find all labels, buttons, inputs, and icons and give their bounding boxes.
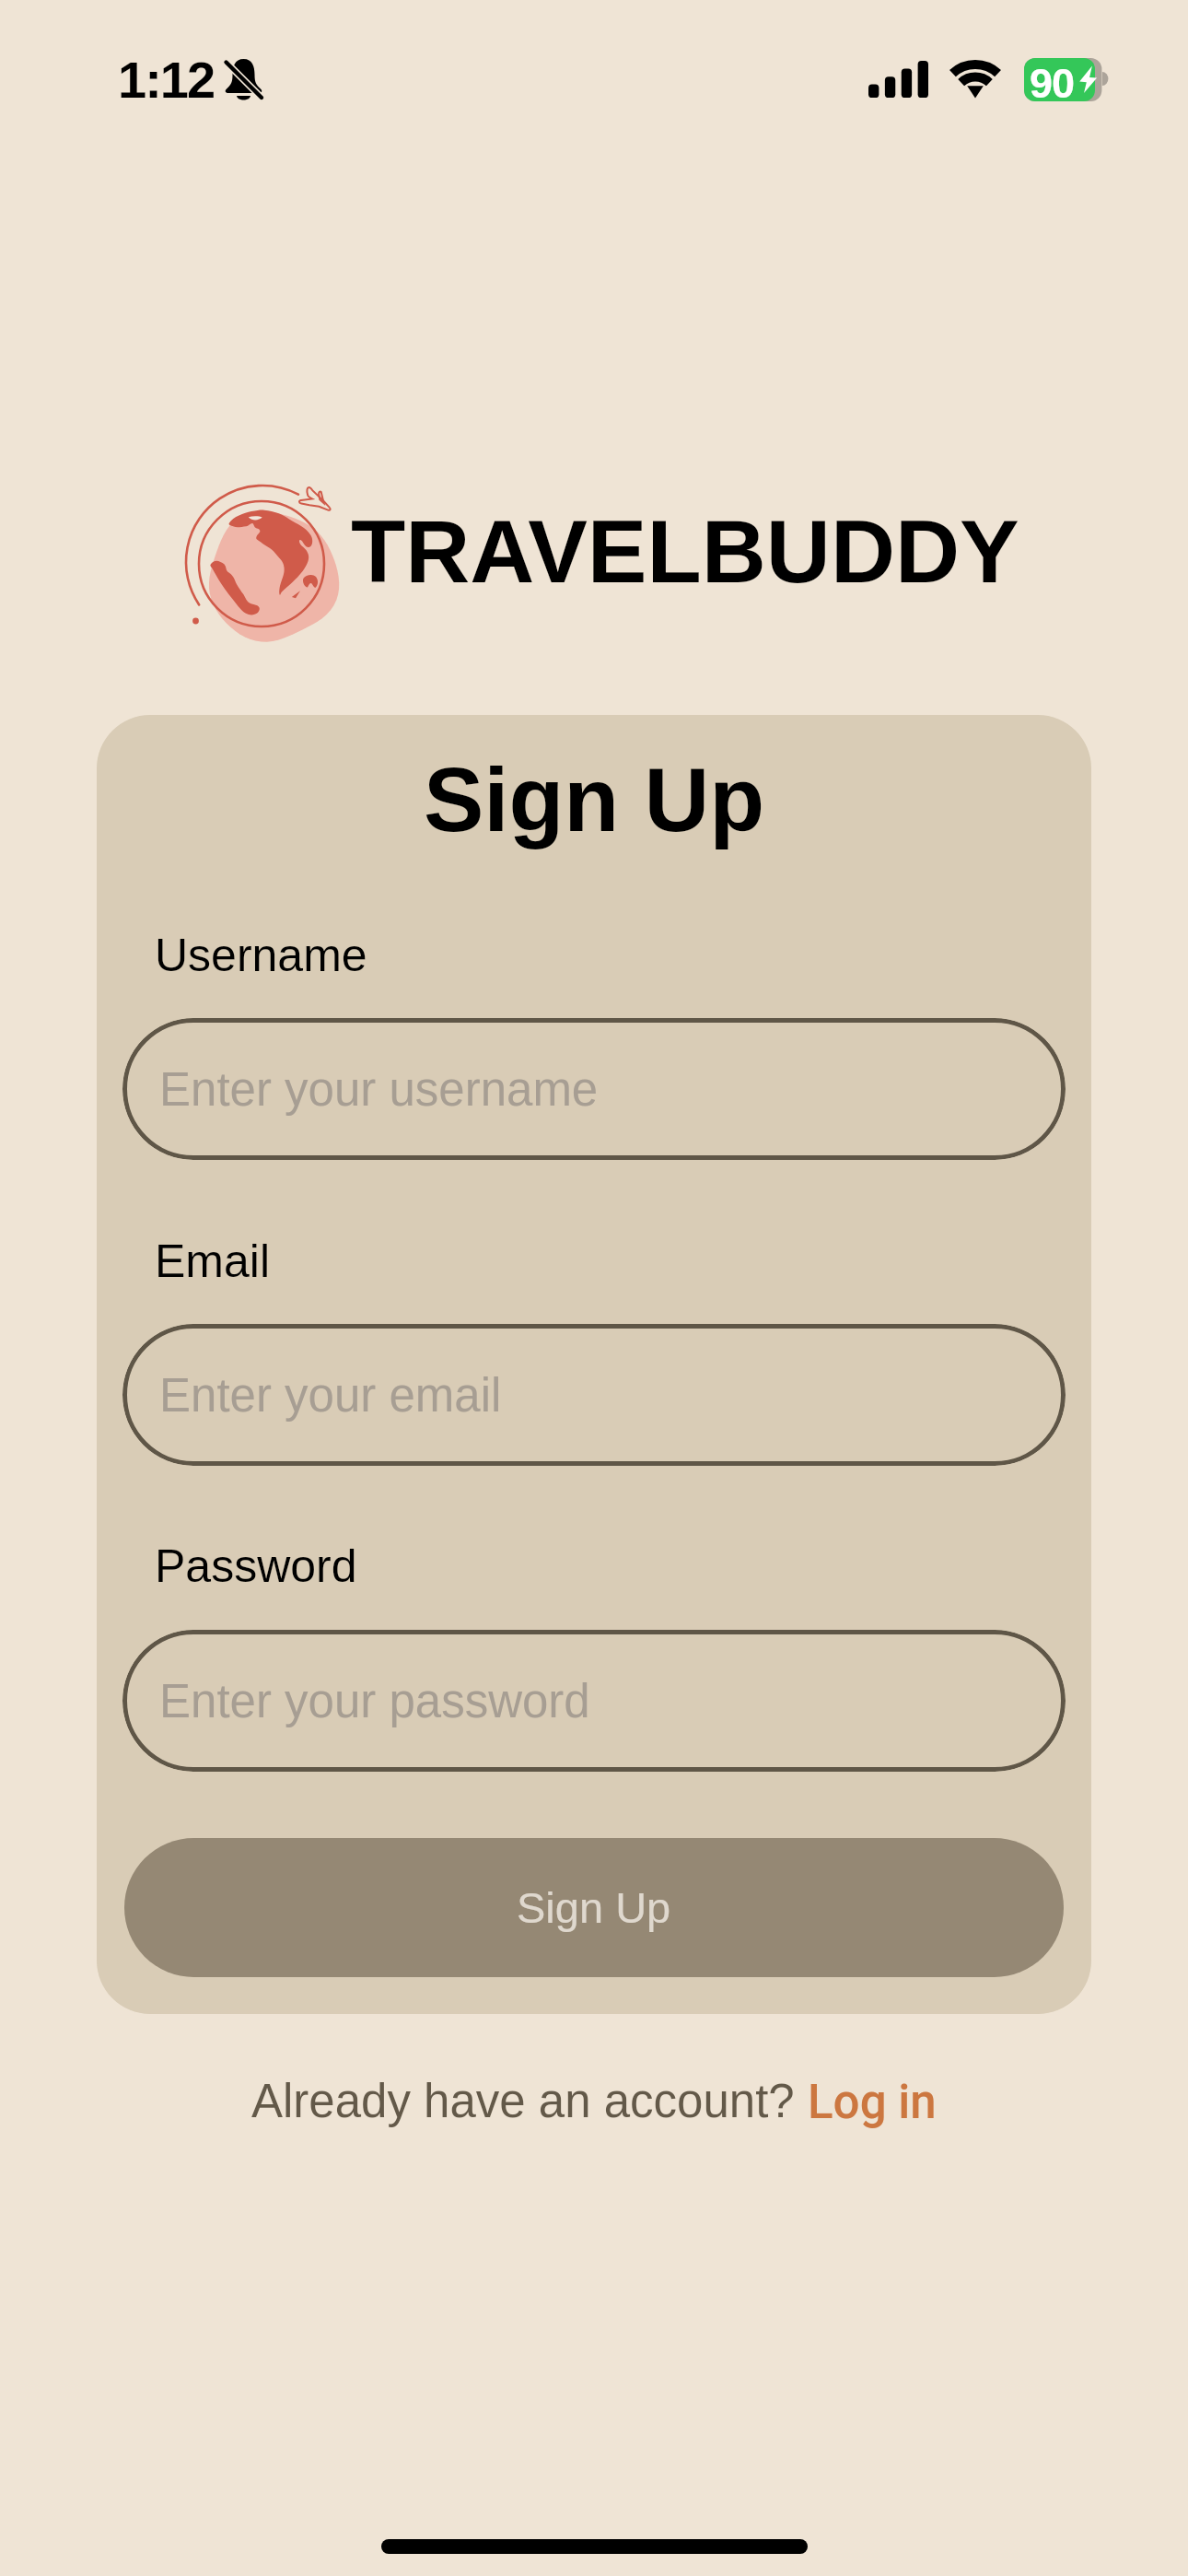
staticText: 1:12 [118, 51, 215, 109]
button[interactable]: Log in [808, 2075, 937, 2130]
other: Battery 90 percent charging [1024, 58, 1109, 101]
button[interactable]: Sign Up [124, 1838, 1064, 1977]
staticText: TRAVELBUDDY [351, 501, 1019, 601]
other: Cellular signal [868, 61, 928, 98]
staticText: Already have an account? [251, 2075, 808, 2127]
other: TravelBuddy logo [180, 474, 341, 640]
staticText: 90 [1030, 60, 1075, 103]
other: Wi-Fi [949, 58, 1002, 96]
button[interactable]: Enter your password [122, 1630, 1066, 1772]
staticText: Sign Up [517, 1883, 671, 1932]
button[interactable]: Enter your email [122, 1324, 1066, 1466]
staticText: Log in [808, 2075, 937, 2130]
staticText: Email [155, 1235, 271, 1287]
staticText: Enter your username [159, 1063, 599, 1116]
staticText: Password [155, 1540, 357, 1592]
staticText: Sign Up [97, 749, 1091, 849]
button[interactable]: Enter your username [122, 1018, 1066, 1160]
other: Notifications silenced [225, 59, 262, 101]
staticText: Username [155, 930, 367, 981]
staticText: Enter your email [159, 1369, 502, 1422]
staticText: Enter your password [159, 1675, 590, 1727]
